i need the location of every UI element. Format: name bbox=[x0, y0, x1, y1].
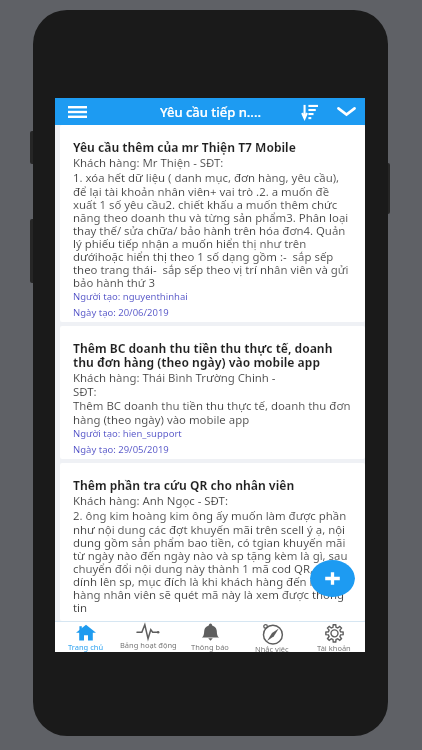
staticText: Bảng hoạt động bbox=[120, 640, 177, 650]
button[interactable]: Tài khoản bbox=[303, 622, 365, 652]
staticText: Thêm BC doanh thu tiền thu thực tế, doan… bbox=[73, 340, 355, 370]
staticText: 2. ông kim hoàng kim ông ấy muốn làm đượ… bbox=[73, 508, 355, 614]
staticText: Thêm BC doanh thu tiền thu thực tế, doan… bbox=[73, 398, 355, 426]
button[interactable]: Yêu cầu thêm của mr Thiện T7 Mobile bbox=[60, 125, 365, 322]
staticText: Khách hàng: Mr Thiện - SĐT: bbox=[73, 155, 224, 170]
staticText: Người tạo: hien_support bbox=[73, 427, 182, 440]
button[interactable]: Open navigation menu bbox=[55, 98, 100, 125]
button[interactable]: Trang chủ bbox=[55, 622, 117, 652]
staticText: Yêu cầu thêm của mr Thiện T7 Mobile bbox=[73, 139, 296, 155]
staticText: Khách hàng: Thái Bình Trường Chinh - SĐT… bbox=[73, 370, 276, 398]
button[interactable]: Thêm BC doanh thu tiền thu thực tế, doan… bbox=[60, 326, 365, 459]
staticText: Ngày tạo: 29/05/2019 bbox=[73, 443, 169, 456]
button[interactable]: Nhắc việc bbox=[241, 622, 303, 652]
staticText: Khách hàng: Anh Ngọc - SĐT: bbox=[73, 493, 228, 508]
staticText: Nhắc việc bbox=[255, 644, 289, 652]
staticText: Người tạo: nguyenthinhai bbox=[73, 290, 188, 303]
staticText: Yêu cầu tiếp n.... bbox=[160, 103, 261, 121]
staticText: Trang chủ bbox=[68, 642, 104, 652]
staticText: Thông báo bbox=[191, 642, 229, 652]
button[interactable]: Thêm phần tra cứu QR cho nhân viên bbox=[60, 463, 365, 621]
button[interactable]: Sort bbox=[293, 98, 327, 125]
button[interactable]: Add new request bbox=[310, 560, 355, 597]
button[interactable]: Bảng hoạt động bbox=[117, 622, 179, 652]
button[interactable]: Thông báo bbox=[179, 622, 241, 652]
staticText: Thêm phần tra cứu QR cho nhân viên bbox=[73, 477, 295, 493]
staticText: 1. xóa hết dữ liệu ( danh mục, đơn hàng,… bbox=[73, 170, 355, 289]
button[interactable]: Expand filter bbox=[327, 98, 365, 125]
staticText: Ngày tạo: 20/06/2019 bbox=[73, 306, 169, 319]
staticText: Tài khoản bbox=[317, 643, 351, 652]
